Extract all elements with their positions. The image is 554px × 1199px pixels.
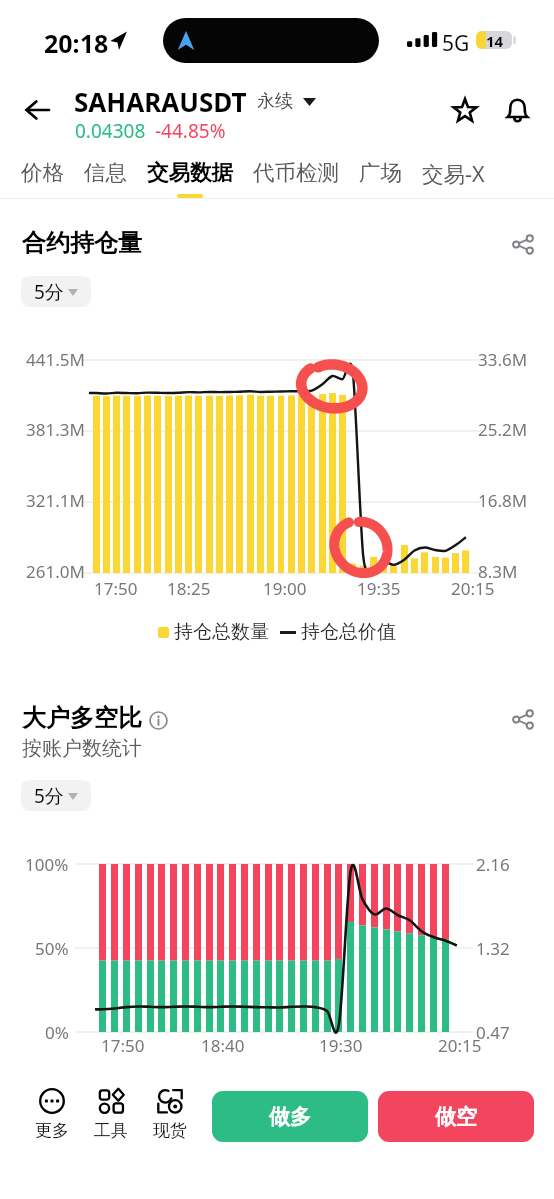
- staticText: 信息: [84, 159, 127, 186]
- button[interactable]: 5分: [21, 276, 91, 307]
- staticText: 交易-X: [422, 159, 485, 188]
- button[interactable]: Favorite: [441, 86, 489, 134]
- staticText: 现货: [153, 1120, 187, 1141]
- staticText: 20:18: [44, 26, 109, 60]
- staticText: 19:30: [319, 1034, 363, 1057]
- staticText: 大户多空比: [22, 703, 142, 733]
- button[interactable]: Share: [501, 697, 545, 741]
- button[interactable]: 5分: [21, 780, 91, 811]
- staticText: 按账户数统计: [22, 736, 142, 761]
- staticText: 17:50: [94, 577, 138, 600]
- staticText: 合约持仓量: [22, 228, 142, 258]
- staticText: 代币检测: [253, 159, 339, 186]
- staticText: 25.2M: [478, 418, 528, 441]
- staticText: 做多: [269, 1104, 311, 1130]
- button[interactable]: 交易数据: [147, 148, 233, 198]
- button[interactable]: 交易-X: [422, 148, 485, 188]
- staticText: 18:25: [167, 577, 211, 600]
- staticText: 19:35: [357, 577, 401, 600]
- staticText: -44.85%: [155, 118, 226, 144]
- staticText: 0%: [45, 1021, 69, 1044]
- button[interactable]: 广场: [359, 148, 402, 186]
- button[interactable]: Share: [501, 222, 545, 266]
- button[interactable]: 代币检测: [253, 148, 339, 186]
- staticText: 持仓总数量: [174, 620, 269, 644]
- staticText: 2.16: [476, 853, 510, 876]
- staticText: 0.47: [476, 1021, 510, 1044]
- button[interactable]: 信息: [84, 148, 127, 186]
- staticText: 广场: [359, 159, 402, 186]
- staticText: 19:00: [263, 577, 307, 600]
- staticText: 33.6M: [478, 348, 528, 371]
- staticText: 20:15: [451, 577, 495, 600]
- staticText: 8.3M: [478, 560, 518, 583]
- button[interactable]: Back: [11, 84, 63, 136]
- button[interactable]: Notifications: [493, 86, 541, 134]
- staticText: 20:15: [438, 1034, 482, 1057]
- button[interactable]: 更多: [24, 1084, 80, 1146]
- button[interactable]: 价格: [21, 148, 64, 186]
- staticText: 50%: [35, 937, 69, 960]
- staticText: 永续: [257, 90, 293, 113]
- staticText: 更多: [35, 1120, 69, 1141]
- staticText: 持仓总价值: [301, 620, 396, 644]
- staticText: 5分: [34, 783, 64, 809]
- staticText: 交易数据: [147, 159, 233, 186]
- button[interactable]: 现货: [142, 1084, 198, 1146]
- staticText: 321.1M: [26, 489, 85, 512]
- button[interactable]: 做空: [378, 1091, 534, 1142]
- staticText: 16.8M: [478, 489, 528, 512]
- button[interactable]: 工具: [83, 1084, 139, 1146]
- staticText: 价格: [21, 159, 64, 186]
- staticText: 工具: [94, 1120, 128, 1141]
- staticText: 1.32: [476, 937, 510, 960]
- staticText: 261.0M: [26, 560, 85, 583]
- staticText: SAHARAUSDT: [74, 84, 247, 119]
- staticText: 做空: [435, 1104, 477, 1130]
- staticText: 17:50: [101, 1034, 145, 1057]
- staticText: 100%: [25, 853, 69, 876]
- staticText: 18:40: [201, 1034, 245, 1057]
- staticText: 5G: [442, 29, 470, 58]
- staticText: 441.5M: [26, 348, 85, 371]
- staticText: 14: [486, 31, 504, 49]
- button[interactable]: 做多: [212, 1091, 368, 1142]
- staticText: 381.3M: [26, 418, 85, 441]
- staticText: 0.04308: [75, 118, 146, 144]
- staticText: 5分: [34, 279, 64, 305]
